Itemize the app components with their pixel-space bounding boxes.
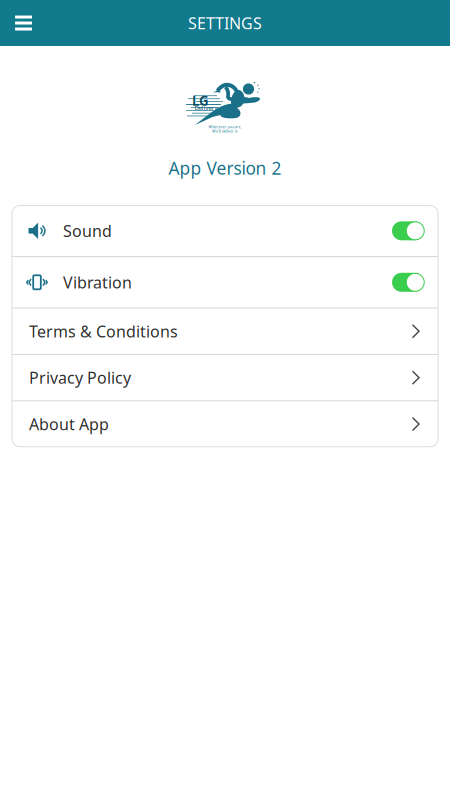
staticText: We'll deliver it. — [212, 128, 238, 134]
button[interactable]: Menu — [0, 0, 47, 46]
staticText: Sound — [63, 220, 112, 241]
staticText: Vibration — [63, 272, 132, 293]
staticText: About App — [29, 413, 109, 435]
staticText: Terms & Conditions — [29, 321, 178, 342]
staticText: SETTINGS — [188, 12, 262, 34]
button[interactable]: Sound — [12, 206, 438, 256]
staticText: Privacy Policy — [29, 367, 131, 388]
button[interactable]: Terms & Conditions — [12, 309, 438, 354]
staticText: LG — [192, 91, 209, 110]
staticText: App Version 2 — [168, 156, 281, 179]
staticText: Wherever you are, — [208, 124, 241, 129]
staticText: Delivery — [194, 103, 217, 112]
button[interactable]: About App — [12, 401, 438, 447]
button[interactable]: Vibration — [12, 257, 438, 308]
button[interactable]: Privacy Policy — [12, 355, 438, 400]
